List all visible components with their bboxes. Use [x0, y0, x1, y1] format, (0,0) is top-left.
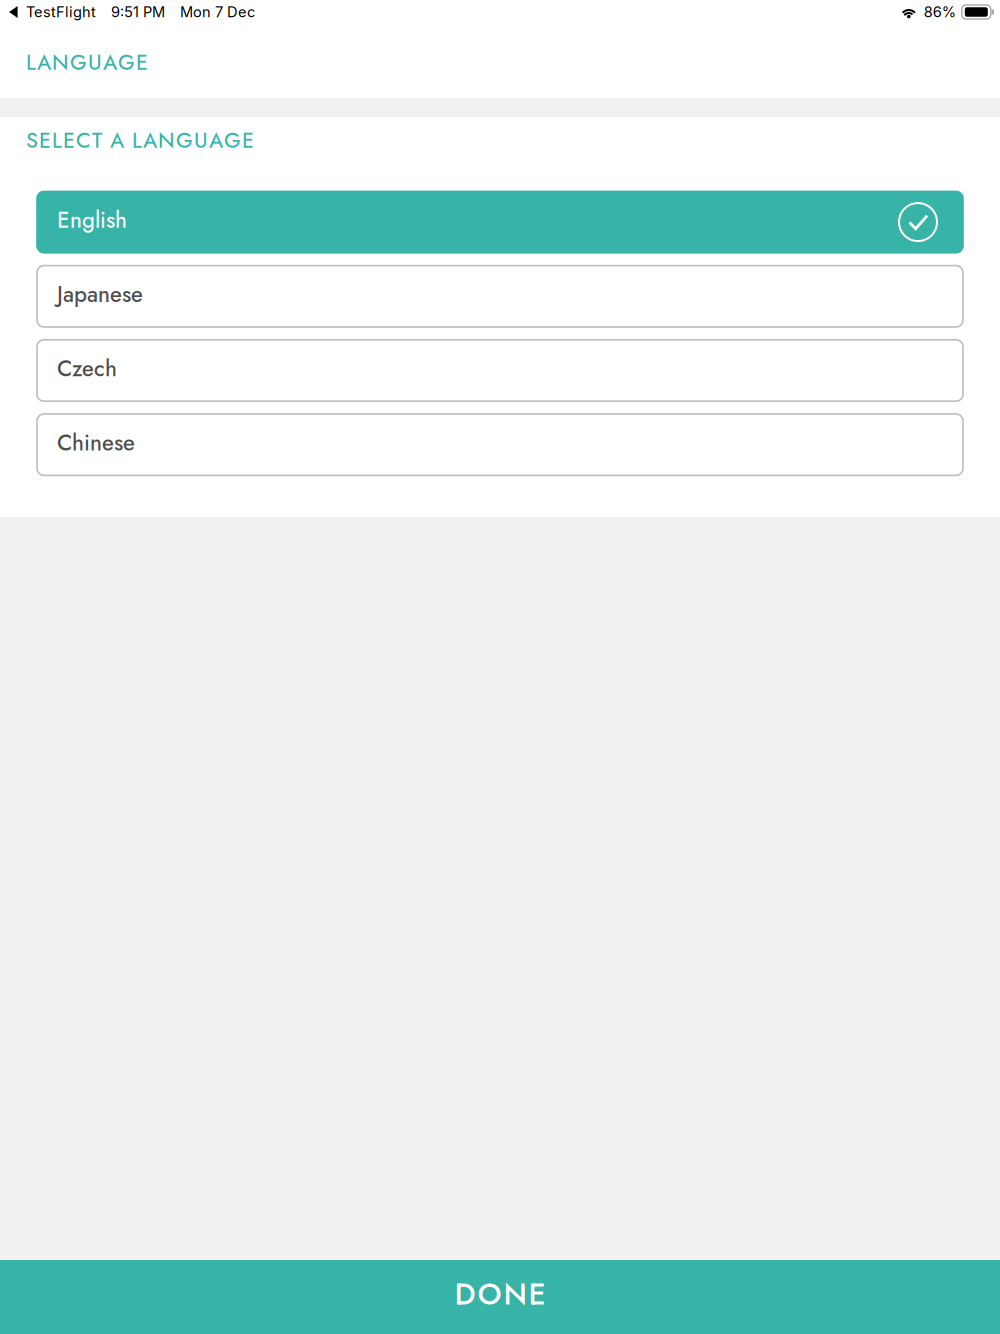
button[interactable]: Czech — [37, 340, 963, 401]
button[interactable]: Japanese — [37, 266, 963, 327]
staticText: Chinese — [57, 427, 135, 459]
staticText: Japanese — [57, 278, 143, 310]
staticText: Mon 7 Dec — [180, 3, 255, 21]
staticText: 86% — [924, 3, 956, 21]
staticText: Czech — [57, 352, 117, 385]
staticText: TestFlight — [26, 3, 96, 21]
button[interactable]: Chinese — [37, 414, 963, 475]
button[interactable]: Done — [0, 1260, 1000, 1334]
staticText: S E L E C T A L A N G U A G E — [26, 125, 254, 156]
staticText: English — [57, 204, 127, 236]
staticText: 9:51 PM — [111, 3, 165, 21]
staticText: D O N E — [454, 1272, 545, 1316]
staticText: L A N G U A G E — [26, 47, 148, 78]
button[interactable]: English — [37, 191, 963, 253]
